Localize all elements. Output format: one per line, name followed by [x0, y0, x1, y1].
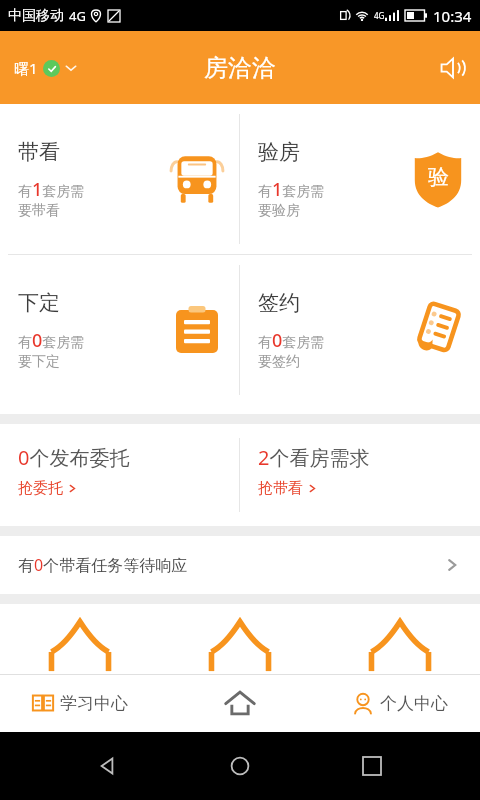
- staticText: 学习中心: [60, 693, 128, 714]
- staticText: 有0套房需: [258, 328, 325, 353]
- button[interactable]: 验房: [240, 104, 480, 254]
- button[interactable]: 学习中心: [0, 674, 160, 732]
- staticText: 签约: [258, 290, 300, 316]
- button[interactable]: 0个发布委托: [0, 424, 239, 526]
- staticText: 曙1: [14, 58, 38, 78]
- button[interactable]: Recents: [348, 742, 396, 790]
- staticText: 有0个带看任务等待响应: [18, 554, 188, 576]
- button[interactable]: 曙1: [0, 52, 85, 84]
- staticText: 验房: [258, 139, 300, 165]
- staticText: 10:34: [433, 6, 472, 26]
- staticText: 要签约: [258, 353, 300, 371]
- staticText: 验: [428, 164, 449, 190]
- staticText: 下定: [18, 290, 60, 316]
- staticText: 房洽洽: [204, 53, 276, 83]
- staticText: 中国移动: [8, 7, 64, 25]
- staticText: 要带看: [18, 202, 60, 220]
- button[interactable]: Home: [160, 674, 320, 732]
- staticText: 有1套房需: [258, 177, 325, 202]
- button[interactable]: Back: [84, 742, 132, 790]
- button[interactable]: Sound: [426, 41, 480, 95]
- staticText: 有0套房需: [18, 328, 85, 353]
- staticText: 有1套房需: [18, 177, 85, 202]
- staticText: 2个看房需求: [258, 444, 370, 471]
- button[interactable]: 个人中心: [320, 674, 480, 732]
- staticText: 带看: [18, 139, 60, 165]
- button[interactable]: 下定: [0, 255, 239, 405]
- staticText: 个人中心: [380, 693, 448, 714]
- staticText: 要验房: [258, 202, 300, 220]
- button[interactable]: 有0个带看任务等待响应: [0, 536, 480, 594]
- button[interactable]: Home: [216, 742, 264, 790]
- staticText: 4G: [69, 7, 86, 25]
- staticText: 要下定: [18, 353, 60, 371]
- staticText: 抢委托: [18, 479, 63, 498]
- staticText: 0个发布委托: [18, 444, 130, 471]
- staticText: 4G: [374, 10, 385, 21]
- button[interactable]: 签约: [240, 255, 480, 405]
- staticText: 抢带看: [258, 479, 303, 498]
- button[interactable]: 带看: [0, 104, 239, 254]
- button[interactable]: 2个看房需求: [240, 424, 480, 526]
